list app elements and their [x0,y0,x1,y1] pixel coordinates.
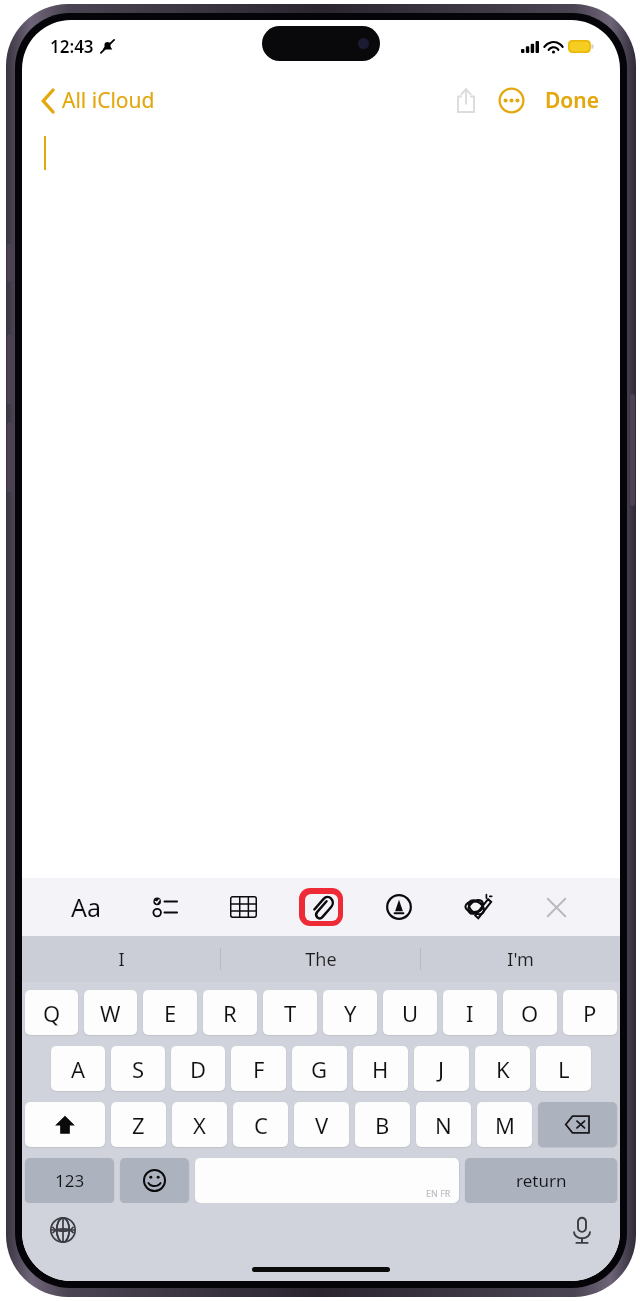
staticText: Q [43,998,61,1028]
staticText: EN FR [426,1187,451,1199]
button[interactable]: I [443,990,497,1035]
button[interactable]: S [111,1046,165,1091]
button[interactable]: All iCloud [34,80,163,121]
button[interactable]: Backspace [538,1102,617,1147]
staticText: H [372,1054,389,1084]
staticText: M [495,1110,515,1140]
button[interactable]: T [263,990,317,1035]
button[interactable]: F [231,1046,286,1091]
staticText: L [558,1054,570,1084]
staticText: F [253,1054,265,1084]
button[interactable]: Add attachment [299,888,343,926]
staticText: Aa [71,890,102,924]
button[interactable]: return [465,1158,617,1203]
staticText: V [315,1110,329,1140]
button[interactable]: More options [492,81,531,120]
staticText: I'm [507,947,534,972]
button[interactable]: I'm [421,936,620,982]
button[interactable]: K [475,1046,530,1091]
staticText: A [71,1054,86,1084]
button[interactable]: B [355,1102,410,1147]
staticText: K [496,1054,510,1084]
staticText: S [132,1054,145,1084]
button[interactable]: Done [539,80,606,121]
staticText: Done [545,86,600,115]
button[interactable]: Emoji [120,1158,189,1203]
button[interactable]: J [414,1046,469,1091]
button[interactable]: R [203,990,257,1035]
button[interactable]: Share [446,78,486,123]
button[interactable]: Shift [25,1102,105,1147]
button[interactable]: Dictation [564,1209,600,1252]
staticText: U [402,998,419,1028]
button[interactable]: Table [221,887,265,927]
staticText: Y [344,998,357,1028]
button[interactable]: Close [534,887,578,927]
staticText: W [100,998,121,1028]
staticText: R [223,998,237,1028]
staticText: I [466,998,474,1028]
button[interactable]: Q [25,990,78,1035]
button[interactable]: The [221,936,420,982]
staticText: J [438,1054,445,1084]
staticText: T [284,998,297,1028]
staticText: N [435,1110,452,1140]
staticText: All iCloud [62,86,155,115]
staticText: I [118,947,125,972]
staticText: X [193,1110,206,1140]
staticText: 12:43 [50,35,94,58]
button[interactable]: X [172,1102,227,1147]
button[interactable]: G [292,1046,347,1091]
button[interactable]: Checklist [143,887,187,927]
button[interactable]: A [51,1046,105,1091]
button[interactable]: W [84,990,137,1035]
button[interactable]: D [171,1046,225,1091]
button[interactable]: Scribble [456,887,500,927]
button[interactable]: E [143,990,197,1035]
button[interactable]: 123 [25,1158,114,1203]
button[interactable]: Markup [377,887,421,927]
button[interactable]: Change keyboard language [42,1209,84,1251]
staticText: The [305,947,337,972]
button[interactable]: Z [111,1102,166,1147]
button[interactable]: L [536,1046,591,1091]
staticText: P [583,998,597,1028]
button[interactable]: P [563,990,617,1035]
button[interactable]: H [353,1046,408,1091]
staticText: Z [132,1110,145,1140]
button[interactable]: M [477,1102,532,1147]
button[interactable]: V [294,1102,349,1147]
staticText: E [164,998,177,1028]
button[interactable]: Y [323,990,377,1035]
button[interactable]: N [416,1102,471,1147]
button[interactable]: Space [195,1158,459,1203]
button[interactable]: Text formatting [64,887,108,927]
button[interactable]: I [22,936,220,982]
staticText: return [516,1169,567,1192]
staticText: G [311,1054,328,1084]
staticText: O [521,998,539,1028]
staticText: B [375,1110,390,1140]
staticText: 123 [55,1169,85,1192]
button[interactable]: O [503,990,557,1035]
button[interactable]: U [383,990,437,1035]
staticText: D [190,1054,207,1084]
staticText: C [254,1110,268,1140]
button[interactable]: C [233,1102,288,1147]
